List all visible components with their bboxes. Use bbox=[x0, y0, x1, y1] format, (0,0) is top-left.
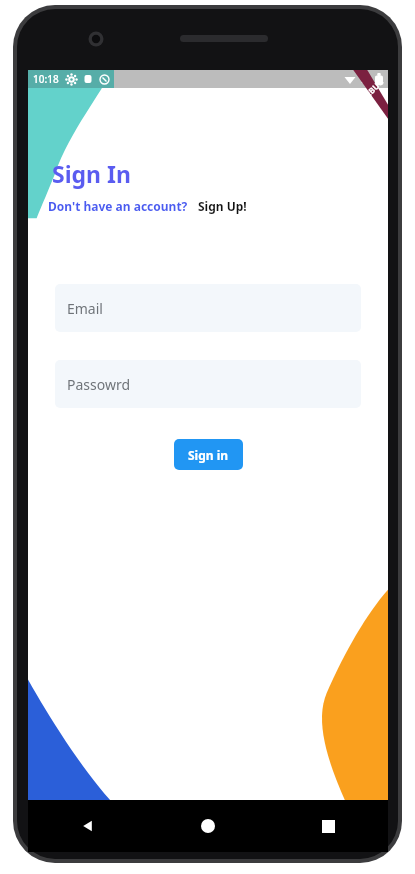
staticText: Sign In bbox=[52, 158, 131, 189]
staticText: Sign in bbox=[188, 447, 229, 463]
button[interactable]: Passowrd bbox=[55, 360, 361, 408]
staticText: DEBUG bbox=[358, 76, 386, 103]
button[interactable]: Recents bbox=[268, 800, 388, 852]
button[interactable]: Email bbox=[55, 284, 361, 332]
staticText: Email bbox=[67, 299, 103, 318]
button[interactable]: Sign Up! bbox=[198, 198, 247, 214]
staticText: 10:18 bbox=[33, 72, 59, 86]
staticText: Sign Up! bbox=[198, 198, 247, 214]
button[interactable]: Back bbox=[28, 800, 148, 852]
button[interactable]: Home bbox=[148, 800, 268, 852]
button[interactable]: Sign in bbox=[174, 439, 243, 470]
staticText: Passowrd bbox=[67, 375, 131, 394]
staticText: Don't have an account? bbox=[48, 198, 188, 214]
